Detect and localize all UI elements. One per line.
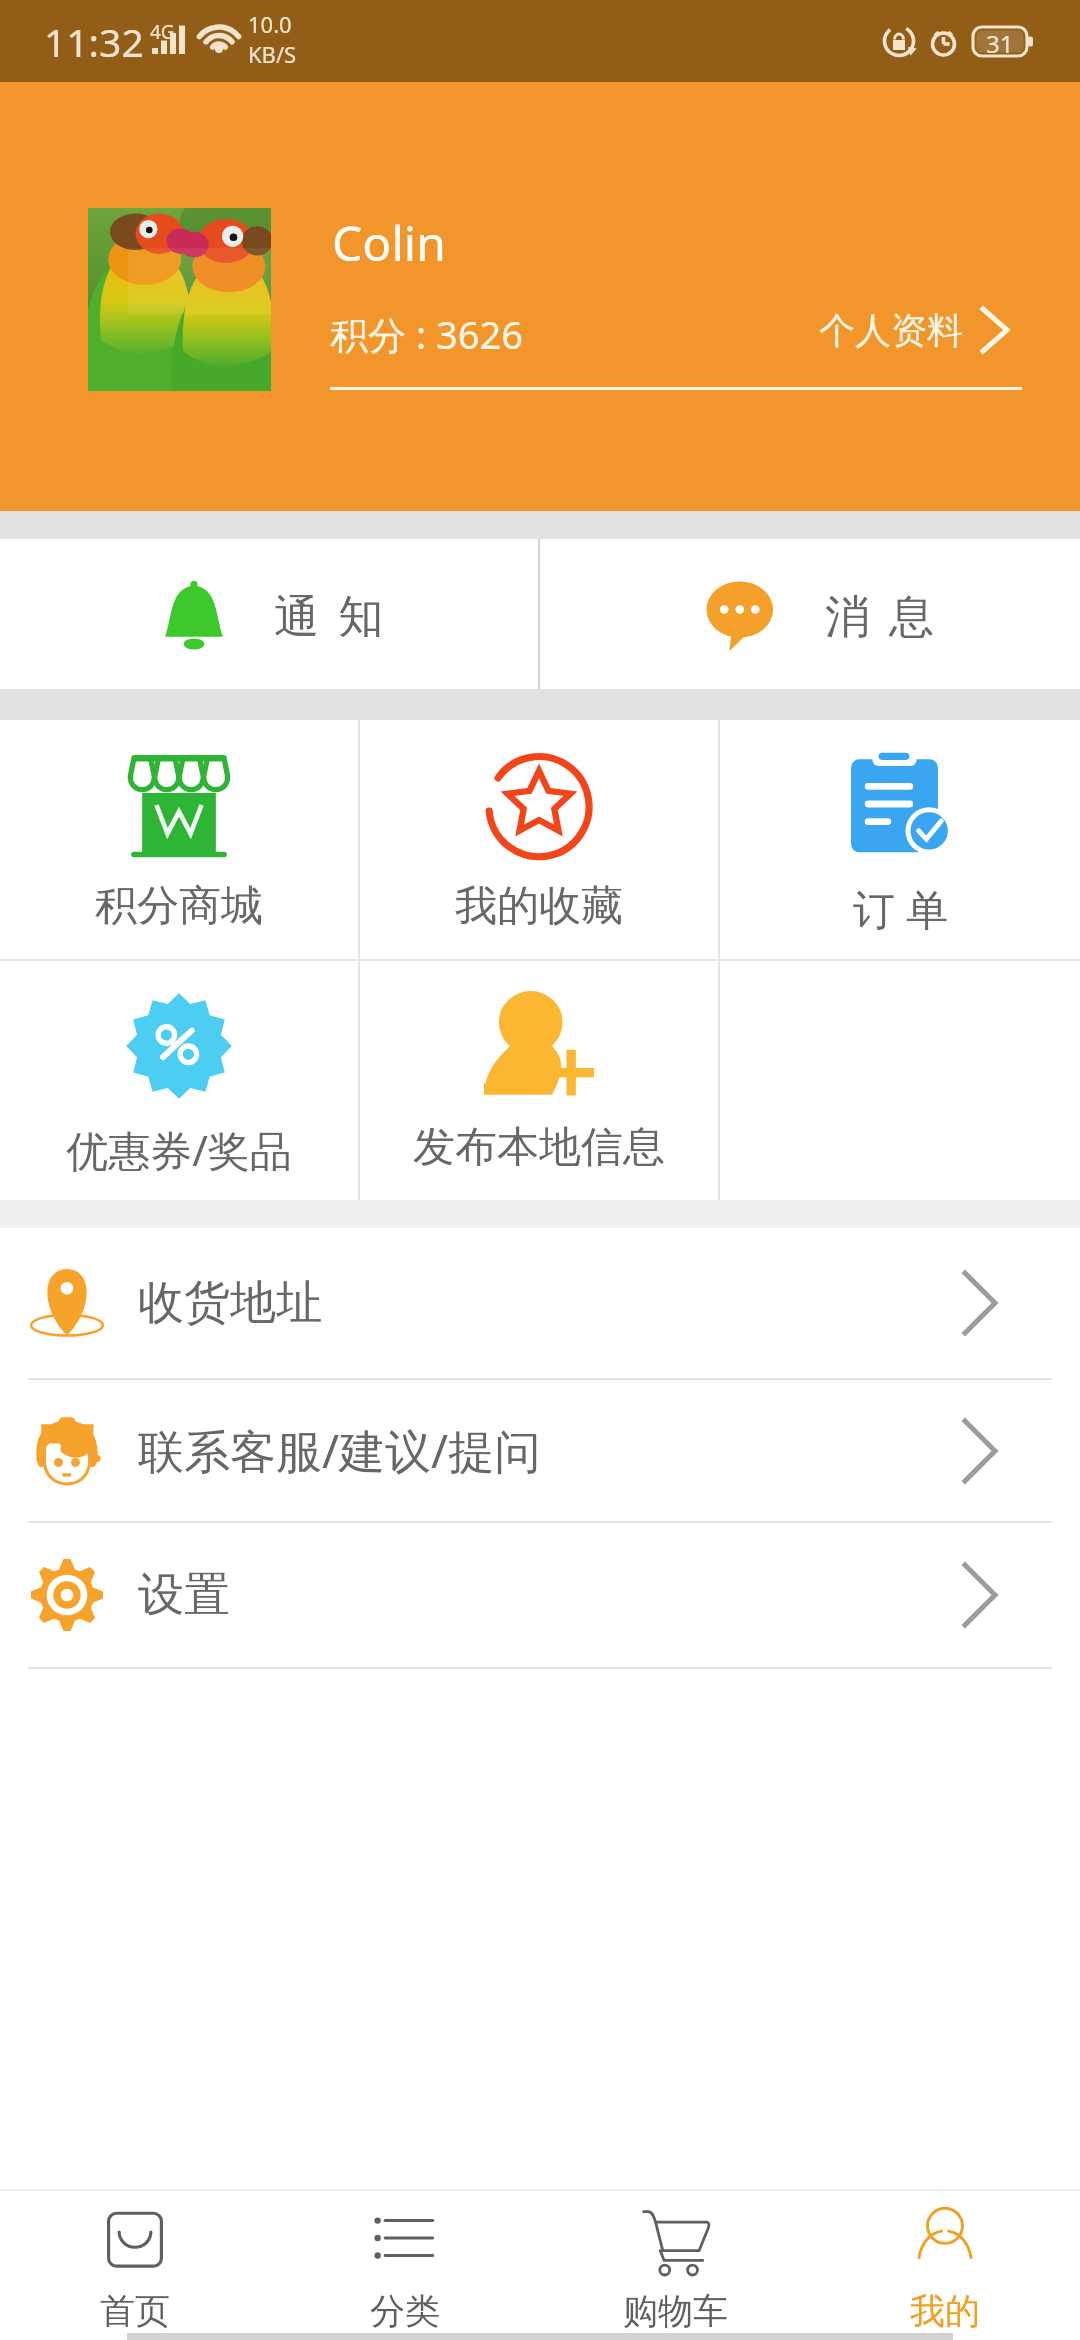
button[interactable]: 我的收藏 [360, 720, 718, 959]
button[interactable]: 通 知 [0, 539, 538, 689]
button[interactable]: 分类 [270, 2191, 540, 2333]
staticText: 优惠券/奖品 [66, 1121, 292, 1178]
staticText: 订 单 [853, 880, 948, 937]
staticText: Colin [332, 210, 446, 275]
button[interactable]: Avatar [88, 208, 271, 391]
staticText: 发布本地信息 [413, 1121, 665, 1174]
staticText: 11:32 [44, 15, 144, 68]
button[interactable]: 我的 [810, 2191, 1080, 2333]
staticText: 积分 : 3626 [330, 308, 523, 360]
staticText: 4G [150, 19, 175, 45]
button[interactable]: 优惠券/奖品 [0, 961, 358, 1200]
staticText: 积分商城 [95, 880, 263, 933]
staticText: 分类 [370, 2289, 440, 2333]
button[interactable]: 消 息 [540, 539, 1080, 689]
staticText: 联系客服/建议/提问 [138, 1419, 541, 1482]
staticText: 收货地址 [138, 1274, 322, 1332]
button[interactable]: 收货地址 [0, 1228, 1080, 1378]
staticText: 设置 [138, 1566, 230, 1624]
button[interactable]: 首页 [0, 2191, 270, 2333]
staticText: 我的 [910, 2289, 980, 2333]
staticText: 通 知 [274, 584, 384, 645]
staticText: 31 [986, 27, 1014, 56]
staticText: 消 息 [825, 584, 935, 645]
staticText: 首页 [100, 2289, 170, 2333]
button[interactable]: 设置 [0, 1523, 1080, 1667]
button[interactable]: 积分商城 [0, 720, 358, 959]
button[interactable]: 联系客服/建议/提问 [0, 1380, 1080, 1521]
button[interactable]: 购物车 [540, 2191, 810, 2333]
button[interactable]: 个人资料 [819, 306, 1010, 354]
staticText: 10.0 [248, 9, 292, 39]
button[interactable]: 发布本地信息 [360, 961, 718, 1200]
staticText: 我的收藏 [455, 880, 623, 933]
staticText: 个人资料 [819, 308, 963, 353]
staticText: KB/S [248, 39, 297, 69]
staticText: 购物车 [623, 2289, 728, 2333]
button[interactable]: 订 单 [720, 720, 1080, 959]
